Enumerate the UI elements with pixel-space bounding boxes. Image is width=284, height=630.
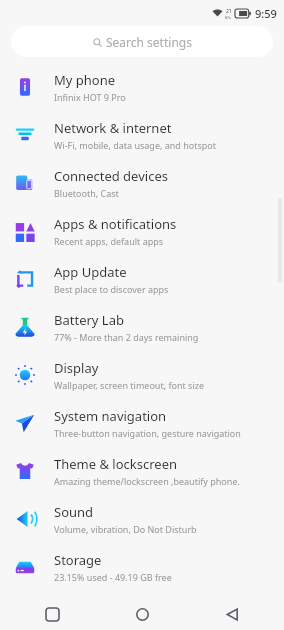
staticText: App Update xyxy=(54,263,127,281)
staticText: Best place to discover apps xyxy=(54,283,169,295)
staticText: 21 xyxy=(226,8,232,15)
button[interactable]: Back xyxy=(216,598,248,630)
staticText: My phone xyxy=(54,71,116,89)
staticText: Battery Lab xyxy=(54,311,124,329)
button[interactable]: Battery Lab xyxy=(0,303,284,351)
button[interactable]: Recent apps xyxy=(36,598,68,630)
button[interactable]: App Update xyxy=(0,255,284,303)
staticText: Display xyxy=(54,359,99,377)
staticText: Wi-Fi, mobile, data usage, and hotspot xyxy=(54,139,216,151)
button[interactable]: Theme & lockscreen xyxy=(0,447,284,495)
staticText: Wallpaper, screen timeout, font size xyxy=(54,379,205,391)
staticText: Recent apps, default apps xyxy=(54,235,164,247)
staticText: Sound xyxy=(54,503,94,521)
button[interactable]: Home xyxy=(126,598,158,630)
button[interactable]: Search settings xyxy=(11,26,273,57)
staticText: Amazing theme/lockscreen ,beautify phone… xyxy=(54,475,240,487)
button[interactable]: System navigation xyxy=(0,399,284,447)
staticText: 9:59 xyxy=(255,6,277,21)
staticText: Bluetooth, Cast xyxy=(54,187,119,199)
staticText: Apps & notifications xyxy=(54,215,177,233)
staticText: Network & internet xyxy=(54,119,172,137)
staticText: 77% - More than 2 days remaining xyxy=(54,331,199,343)
button[interactable]: Storage xyxy=(0,543,284,591)
button[interactable]: Display xyxy=(0,351,284,399)
staticText: System navigation xyxy=(54,407,167,425)
button[interactable]: Connected devices xyxy=(0,159,284,207)
staticText: Infinix HOT 9 Pro xyxy=(54,91,126,103)
button[interactable]: Sound xyxy=(0,495,284,543)
staticText: B/s xyxy=(225,15,232,20)
staticText: Storage xyxy=(54,551,102,569)
button[interactable]: My phone xyxy=(0,63,284,111)
button[interactable]: Apps & notifications xyxy=(0,207,284,255)
staticText: Search settings xyxy=(106,34,192,50)
staticText: 23.15% used - 49.19 GB free xyxy=(54,571,172,583)
staticText: Connected devices xyxy=(54,167,168,185)
staticText: Three-button navigation, gesture navigat… xyxy=(54,427,241,439)
staticText: Volume, vibration, Do Not Disturb xyxy=(54,523,197,535)
button[interactable]: Network & internet xyxy=(0,111,284,159)
staticText: Theme & lockscreen xyxy=(54,455,178,473)
